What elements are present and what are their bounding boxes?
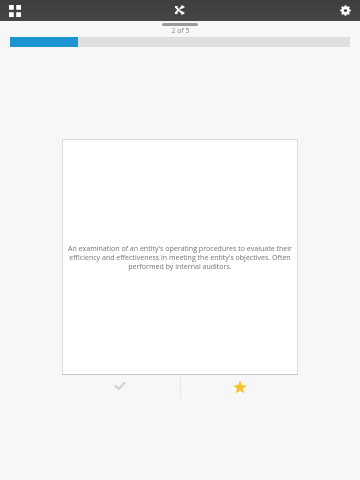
staticText: An examination of an entity's operating … — [67, 243, 293, 271]
staticText: 2 of 5 — [171, 26, 190, 36]
button[interactable]: Shuffle — [167, 0, 193, 21]
button[interactable]: Mark as known — [62, 375, 180, 397]
button[interactable]: Card list — [0, 0, 30, 21]
button[interactable]: Settings — [331, 0, 360, 21]
button[interactable]: Star card — [181, 375, 298, 397]
button[interactable]: An examination of an entity's operating … — [62, 139, 298, 375]
